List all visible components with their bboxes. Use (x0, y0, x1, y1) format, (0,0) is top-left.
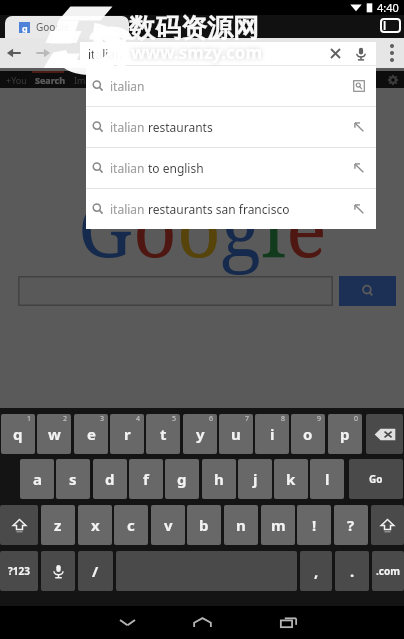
button[interactable]: italian (86, 107, 376, 147)
staticText: 2 (63, 414, 68, 424)
button[interactable]: Back (1, 38, 27, 68)
staticText: l (325, 469, 330, 489)
staticText: l (262, 176, 286, 280)
button[interactable]: Go (349, 459, 403, 499)
staticText: r (124, 424, 131, 444)
staticText: 5 (172, 414, 177, 424)
button[interactable]: r (110, 414, 144, 454)
button[interactable]: f (129, 459, 163, 499)
button[interactable]: g (5, 16, 129, 38)
button[interactable]: w (37, 414, 71, 454)
button[interactable]: i (255, 414, 289, 454)
staticText: Go (369, 472, 383, 486)
button[interactable]: Search (339, 276, 396, 306)
button[interactable]: ! (297, 505, 331, 545)
button[interactable]: z (41, 505, 75, 545)
staticText: italian (110, 201, 148, 217)
staticText: Google (36, 20, 70, 34)
button[interactable]: a (20, 459, 54, 499)
button[interactable]: u (219, 414, 253, 454)
staticText: ? (347, 515, 355, 535)
button[interactable]: Forward (30, 38, 56, 68)
button[interactable]: c (114, 505, 148, 545)
button[interactable]: n (224, 505, 258, 545)
button[interactable]: Switch tabs (378, 16, 402, 34)
staticText: n (236, 515, 246, 535)
button[interactable] (18, 276, 333, 306)
staticText: ! (312, 515, 317, 535)
staticText: t (160, 424, 167, 444)
staticText: j (253, 469, 258, 489)
staticText: d (105, 469, 115, 489)
button[interactable]: italian (86, 66, 376, 106)
staticText: to english (148, 160, 204, 176)
button[interactable]: x (78, 505, 112, 545)
button[interactable]: italian (86, 189, 376, 229)
button[interactable]: k (274, 459, 308, 499)
staticText: o (133, 176, 177, 280)
staticText: Search (35, 74, 66, 86)
staticText: x (91, 515, 100, 535)
button[interactable]: j (238, 459, 272, 499)
button[interactable]: More options (380, 38, 404, 68)
staticText: 6 (209, 414, 214, 424)
button[interactable]: ?123 (0, 551, 38, 591)
button[interactable] (0, 505, 38, 545)
button[interactable]: v (151, 505, 185, 545)
button[interactable]: h (202, 459, 236, 499)
staticText: g (221, 176, 262, 280)
staticText: , (314, 561, 319, 581)
staticText: G (78, 176, 133, 280)
staticText: o (303, 424, 313, 444)
button[interactable]: q (1, 414, 35, 454)
staticText: 9 (317, 414, 322, 424)
button[interactable]: l (310, 459, 344, 499)
staticText: italian (110, 160, 148, 176)
staticText: / (92, 561, 99, 581)
staticText: o (177, 176, 221, 280)
button[interactable]: ? (334, 505, 368, 545)
button[interactable]: / (78, 551, 113, 591)
button[interactable]: y (183, 414, 217, 454)
button[interactable]: s (56, 459, 90, 499)
staticText: 数码资源网 (129, 12, 259, 45)
button[interactable]: p (328, 414, 362, 454)
staticText: u (231, 424, 241, 444)
staticText: 0 (354, 414, 359, 424)
staticText: www.smzy.com (131, 41, 263, 64)
button[interactable]: . (335, 551, 369, 591)
button[interactable]: .com (372, 551, 404, 591)
staticText: h (214, 469, 224, 489)
staticText: z (54, 515, 62, 535)
button[interactable]: b (187, 505, 221, 545)
staticText: restaurants san francisco (148, 201, 290, 217)
button[interactable]: o (291, 414, 325, 454)
staticText: ?123 (8, 564, 30, 578)
staticText: q (13, 424, 23, 444)
button[interactable]: d (93, 459, 127, 499)
button[interactable]: Clear (323, 42, 347, 65)
staticText: Images (74, 74, 106, 86)
button[interactable]: Hide keyboard (105, 606, 149, 639)
button[interactable]: e (74, 414, 108, 454)
button[interactable]: Voice search (349, 42, 373, 65)
staticText: v (164, 515, 173, 535)
button[interactable]: italian (80, 42, 376, 65)
button[interactable] (371, 505, 404, 545)
button[interactable] (366, 414, 403, 454)
button[interactable]: m (261, 505, 295, 545)
staticText: restaurants (148, 119, 213, 135)
button[interactable]: t (146, 414, 180, 454)
button[interactable]: , (300, 551, 332, 591)
staticText: p (340, 424, 350, 444)
staticText: 8 (281, 414, 286, 424)
button[interactable]: Recent apps (266, 606, 310, 639)
button[interactable]: italian (86, 148, 376, 188)
staticText: italian (110, 78, 145, 94)
button[interactable]: Home (180, 606, 224, 639)
button[interactable] (41, 551, 75, 591)
button[interactable]: g (165, 459, 199, 499)
staticText: c (127, 515, 135, 535)
staticText: 3 (100, 414, 105, 424)
